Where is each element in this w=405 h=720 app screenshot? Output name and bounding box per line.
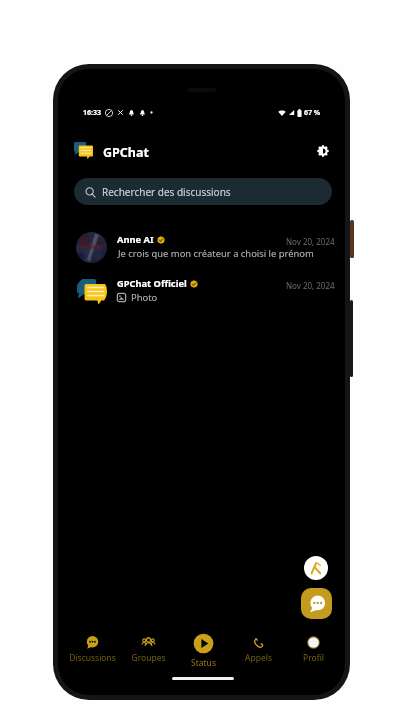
staticText: Nov 20, 2024 [286,280,335,291]
staticText: Anne AI [117,233,154,246]
staticText: Appels [245,652,272,664]
button[interactable]: Rechercher des discussions [74,178,332,205]
staticText: Je crois que mon créateur a choisi le pr… [118,247,314,260]
staticText: 67 % [304,108,321,118]
staticText: Discussions [69,652,116,664]
staticText: Groupes [131,652,166,664]
staticText: Photo [131,291,158,304]
button[interactable]: Nov 20, 2024 [58,226,345,270]
staticText: 16:33 [83,108,101,118]
button[interactable]: Groupes [120,627,176,669]
button[interactable]: Nouvelle discussion [301,588,332,619]
button[interactable]: Discussions [64,627,120,669]
staticText: Status [191,657,216,669]
staticText: Nov 20, 2024 [286,236,335,247]
button[interactable]: Assistant IA [304,556,328,580]
staticText: Rechercher des discussions [102,185,231,199]
button[interactable]: Status [175,627,231,669]
button[interactable]: Changer de thème [311,139,334,162]
staticText: Profil [303,652,324,664]
button[interactable]: Appels [230,627,286,669]
staticText: GPChat [103,144,149,161]
button[interactable]: Nov 20, 2024 [58,270,345,314]
button[interactable]: Profil [285,627,341,669]
staticText: GPChat Officiel [117,277,187,290]
